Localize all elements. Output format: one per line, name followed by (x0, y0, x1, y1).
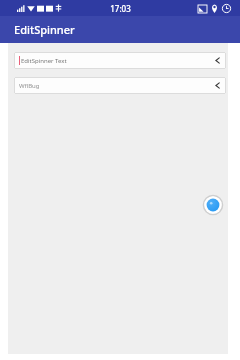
staticText: EditSpinner (14, 22, 75, 37)
staticText: WflBug (19, 82, 215, 90)
button[interactable]: WflBug (14, 77, 226, 94)
staticText: EditSpinner Text (21, 57, 215, 65)
button[interactable]: EditSpinner Text (14, 52, 226, 69)
button[interactable]: Assistant bubble (203, 195, 223, 215)
staticText: 17:03 (110, 3, 131, 14)
